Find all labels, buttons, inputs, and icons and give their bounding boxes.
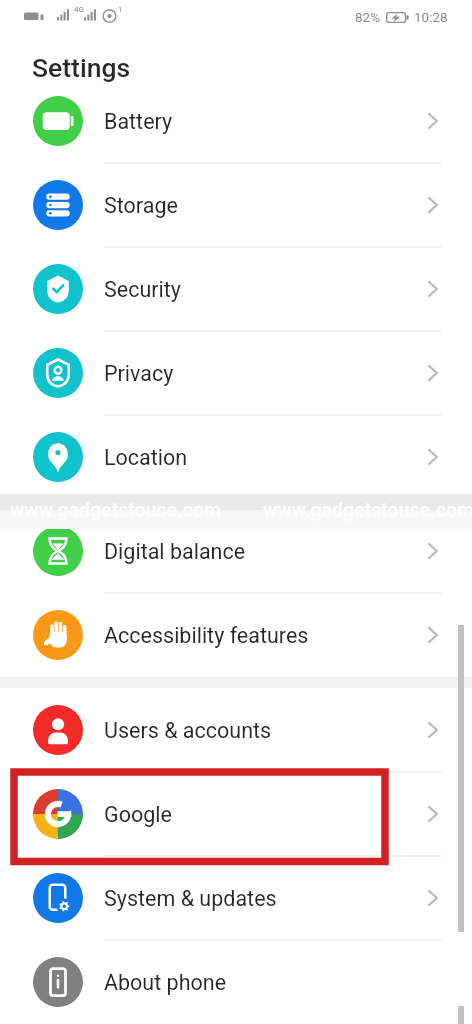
button[interactable]: Battery [0,79,472,163]
button[interactable]: Google [0,772,472,856]
button[interactable]: Security [0,247,472,331]
staticText: Battery [104,109,173,134]
staticText: 4G [74,5,84,14]
staticText: Privacy [104,361,174,386]
button[interactable]: Accessibility features [0,593,472,677]
staticText: Settings [32,52,131,83]
staticText: 1 [118,5,123,14]
button[interactable]: Digital balance [0,509,472,593]
staticText: 10:28 [414,9,448,25]
button[interactable]: Privacy [0,331,472,415]
button[interactable]: System & updates [0,856,472,940]
staticText: Users & accounts [104,718,272,743]
button[interactable]: About phone [0,940,472,1024]
staticText: System & updates [104,886,277,911]
staticText: www.gadgetstouse.com [10,499,221,522]
staticText: Google [104,802,172,827]
staticText: Accessibility features [104,623,309,648]
staticText: Location [104,445,188,470]
button[interactable]: Users & accounts [0,688,472,772]
staticText: Security [104,277,181,302]
button[interactable]: Location [0,415,472,499]
staticText: About phone [104,970,227,995]
button[interactable]: Storage [0,163,472,247]
staticText: www.gadgetstouse.com [263,499,472,522]
staticText: Digital balance [104,539,246,564]
staticText: Storage [104,193,178,218]
staticText: 82% [355,9,381,25]
